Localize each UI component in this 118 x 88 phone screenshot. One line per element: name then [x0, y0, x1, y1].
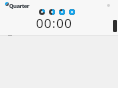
other: Quarter logo: [5, 2, 9, 6]
staticText: Quarter: [9, 2, 29, 10]
staticText: 00:00: [36, 14, 73, 32]
button[interactable]: Settings: [105, 1, 112, 8]
